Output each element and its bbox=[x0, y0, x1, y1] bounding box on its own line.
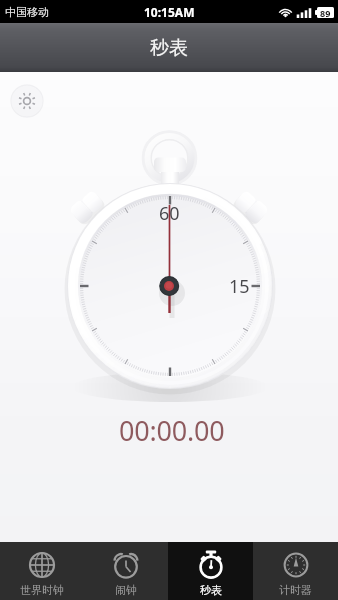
staticText: 秒表 bbox=[200, 583, 222, 597]
staticText: 计时器 bbox=[279, 583, 312, 597]
staticText: 中国移动 bbox=[5, 5, 49, 19]
staticText: 10:15AM bbox=[144, 4, 195, 20]
button[interactable]: 计时器 bbox=[253, 542, 338, 600]
staticText: 闹钟 bbox=[115, 583, 137, 597]
staticText: 秒表 bbox=[150, 36, 188, 60]
button[interactable]: 世界时钟 bbox=[0, 542, 84, 600]
button[interactable]: Brightness bbox=[10, 84, 44, 118]
staticText: 15 bbox=[229, 274, 250, 299]
staticText: 60 bbox=[159, 201, 180, 226]
button[interactable]: 秒表 bbox=[168, 542, 253, 600]
button[interactable]: 闹钟 bbox=[84, 542, 168, 600]
staticText: 89 bbox=[320, 7, 331, 18]
staticText: 00:00.00 bbox=[119, 412, 225, 449]
staticText: 世界时钟 bbox=[20, 583, 64, 597]
